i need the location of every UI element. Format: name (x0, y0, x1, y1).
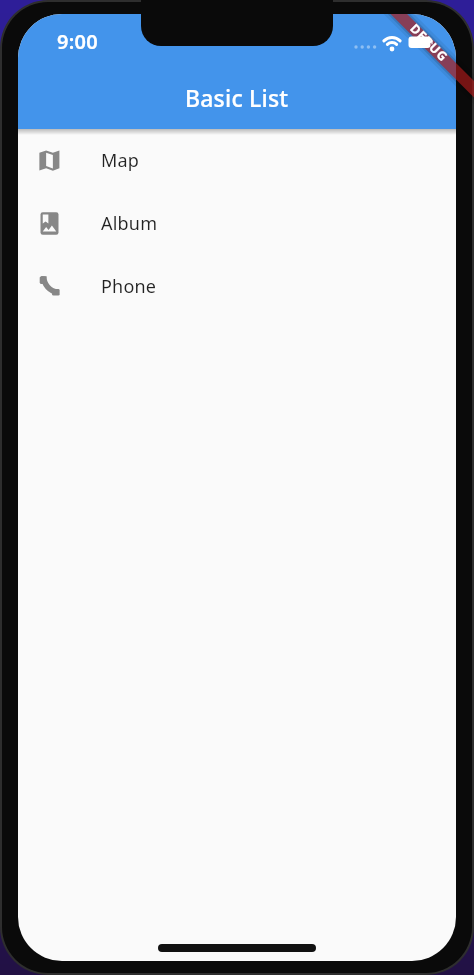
staticText: Album (101, 211, 158, 236)
staticText: Phone (101, 274, 157, 299)
staticText: Map (101, 148, 140, 173)
button[interactable]: Phone (18, 255, 456, 318)
staticText: DEBUG (406, 20, 452, 65)
staticText: 9:00 (57, 28, 99, 55)
staticText: Basic List (185, 82, 289, 113)
button[interactable]: Map (18, 129, 456, 192)
button[interactable]: Album (18, 192, 456, 255)
